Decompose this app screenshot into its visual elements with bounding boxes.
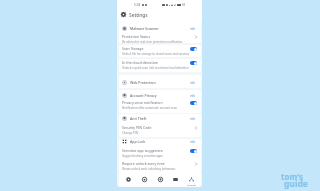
staticText: Settings [187, 183, 197, 186]
button[interactable]: Privacy [138, 172, 151, 187]
button[interactable]: Anti Theft [154, 172, 167, 187]
staticText: info [190, 94, 196, 98]
button[interactable]: Account Privacy [119, 92, 201, 99]
button[interactable]: App Lock [119, 138, 201, 145]
button[interactable]: Protection Status [119, 33, 201, 44]
staticText: info [190, 81, 196, 85]
staticText: info [190, 140, 196, 144]
staticText: tom's [281, 171, 304, 182]
button[interactable]: Protection [122, 172, 135, 187]
staticText: Require unlock every time [122, 161, 165, 166]
staticText: Suggest locking sensitive apps [122, 154, 163, 158]
button[interactable]: VPN [169, 172, 182, 187]
button[interactable]: Malware Scanner [119, 25, 201, 32]
staticText: 69 [182, 3, 186, 7]
button[interactable]: In the cloud detection [119, 59, 201, 70]
staticText: Privacy voice notification [122, 100, 163, 105]
staticText: Settings [129, 12, 148, 19]
button[interactable]: Require unlock every time [119, 160, 201, 171]
staticText: Shows unlock each unlocking behaviour [122, 167, 176, 171]
button[interactable]: Web Protection [119, 79, 201, 86]
staticText: App Lock [130, 139, 146, 144]
staticText: Notification after automatic account sca… [122, 106, 178, 110]
staticText: Change PIN [122, 131, 138, 135]
button[interactable]: Security PIN Code [119, 124, 201, 135]
staticText: Be alerted to real-time protection notif… [122, 40, 183, 44]
button[interactable]: Sensitive app suggestion [119, 147, 201, 158]
staticText: Unlock a quick scan info to retrieve loc… [122, 66, 189, 70]
staticText: info [190, 27, 196, 31]
staticText: Scan Storage [122, 46, 144, 51]
staticText: In the cloud detection [122, 60, 158, 65]
button[interactable]: Scan Storage [119, 45, 201, 56]
staticText: info [190, 117, 196, 121]
staticText: Protection Status [122, 34, 151, 39]
button[interactable]: Settings [185, 172, 198, 187]
staticText: Sensitive app suggestion [122, 148, 163, 153]
staticText: Malware Scanner [130, 26, 159, 31]
button[interactable]: Privacy voice notification [119, 99, 201, 110]
staticText: Security PIN Code [122, 125, 152, 130]
staticText: Anti Theft [130, 116, 147, 121]
button[interactable]: Anti Theft [119, 115, 201, 122]
staticText: 5:04 [134, 3, 141, 7]
staticText: guide [284, 178, 308, 190]
staticText: Account Privacy [130, 93, 157, 98]
staticText: Unlock file for storage to reveal scans … [122, 52, 190, 56]
staticText: Web Protection [130, 80, 156, 85]
